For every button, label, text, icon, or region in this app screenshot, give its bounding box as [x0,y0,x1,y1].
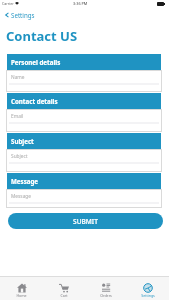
button[interactable]: Subject [7,133,161,149]
button[interactable]: Settings [127,277,169,300]
staticText: Personel details [11,58,61,66]
staticText: Contact details [11,97,58,105]
button[interactable]: Email [6,109,162,132]
staticText: Home [16,293,27,298]
staticText: Message [11,193,31,200]
button[interactable]: Orders [85,277,127,300]
button[interactable]: Name [6,70,162,92]
button[interactable]: Cart [43,277,85,300]
button[interactable]: Personel details [7,54,161,70]
other: Back [4,12,10,18]
staticText: Email [11,113,24,120]
button[interactable]: Contact details [7,93,161,109]
staticText: Settings [141,293,155,298]
staticText: Settings [11,11,35,19]
staticText: SUBMIT [73,217,98,226]
staticText: Cart [60,293,68,298]
staticText: Orders [100,293,112,298]
staticText: Carrier [2,1,14,6]
staticText: Contact US [6,27,78,45]
staticText: Subject [11,153,28,160]
staticText: Name [11,74,25,81]
button[interactable]: SUBMIT [8,213,163,229]
staticText: Subject [11,137,34,145]
staticText: 3:36 PM [73,1,88,6]
staticText: Message [11,177,39,185]
button[interactable]: Back [4,11,35,19]
button[interactable]: Message [7,173,161,189]
button[interactable]: Home [0,277,43,300]
button[interactable]: Subject [6,149,162,172]
button[interactable]: Message [6,189,162,208]
